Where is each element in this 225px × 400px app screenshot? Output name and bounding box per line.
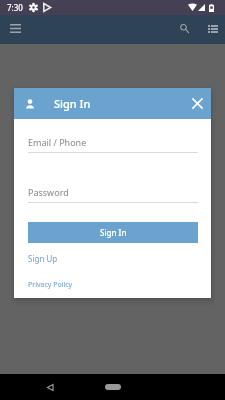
button[interactable]: Home: [100, 374, 126, 400]
button[interactable]: Sign In: [28, 222, 198, 243]
staticText: Privacy Policy: [28, 280, 73, 290]
button[interactable]: Privacy Policy: [28, 280, 73, 290]
staticText: Sign In: [54, 96, 91, 111]
staticText: Sign In: [100, 227, 127, 238]
button[interactable]: Menu: [1, 15, 30, 44]
button[interactable]: Search: [170, 15, 199, 44]
button[interactable]: View list: [198, 15, 225, 44]
button[interactable]: Close: [180, 88, 211, 119]
button[interactable]: Sign Up: [28, 253, 58, 264]
staticText: Email / Phone: [28, 136, 87, 148]
staticText: Sign Up: [28, 253, 58, 264]
staticText: 7:30: [7, 2, 23, 13]
button[interactable]: Back: [38, 375, 62, 399]
staticText: Password: [28, 186, 69, 198]
